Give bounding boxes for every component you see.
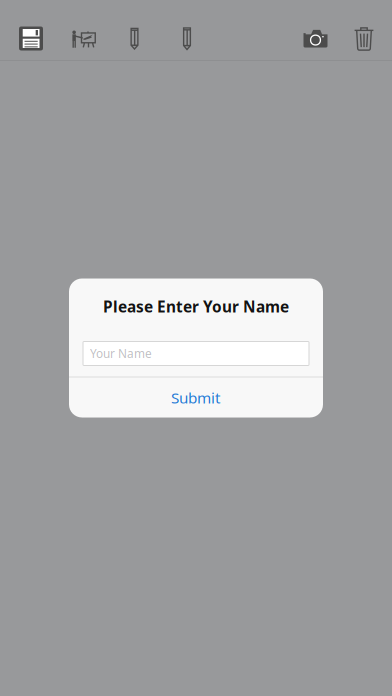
button[interactable]: Pen (105, 0, 164, 61)
button[interactable]: Your Name (83, 341, 309, 365)
staticText: Submit (171, 387, 221, 408)
button[interactable]: Marker (164, 0, 210, 61)
button[interactable]: Present (62, 0, 105, 61)
button[interactable]: Submit (69, 377, 323, 417)
button[interactable]: Camera (295, 0, 336, 61)
staticText: Please Enter Your Name (103, 296, 289, 317)
button[interactable]: Save (0, 0, 62, 61)
staticText: Your Name (90, 346, 152, 361)
button[interactable]: Delete (336, 0, 392, 61)
